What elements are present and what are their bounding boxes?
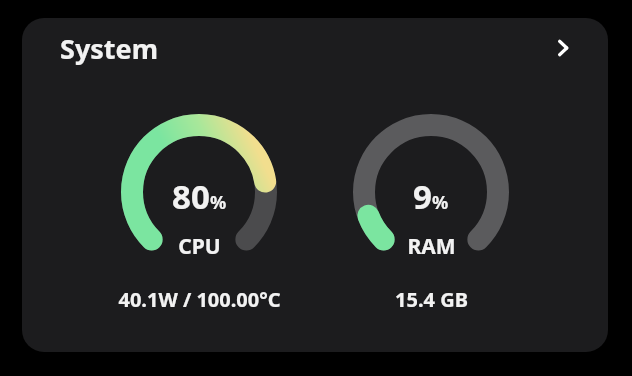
button[interactable]: System xyxy=(22,18,608,352)
staticText: % xyxy=(210,190,227,215)
staticText: System xyxy=(60,30,159,67)
staticText: 40.1W / 100.00°C xyxy=(118,286,281,313)
staticText: RAM xyxy=(407,232,456,261)
button[interactable]: Open system details xyxy=(542,28,582,68)
staticText: CPU xyxy=(178,232,221,261)
staticText: 15.4 GB xyxy=(395,286,468,313)
staticText: % xyxy=(432,190,449,215)
staticText: 80 xyxy=(172,174,210,219)
staticText: 9 xyxy=(413,174,432,219)
